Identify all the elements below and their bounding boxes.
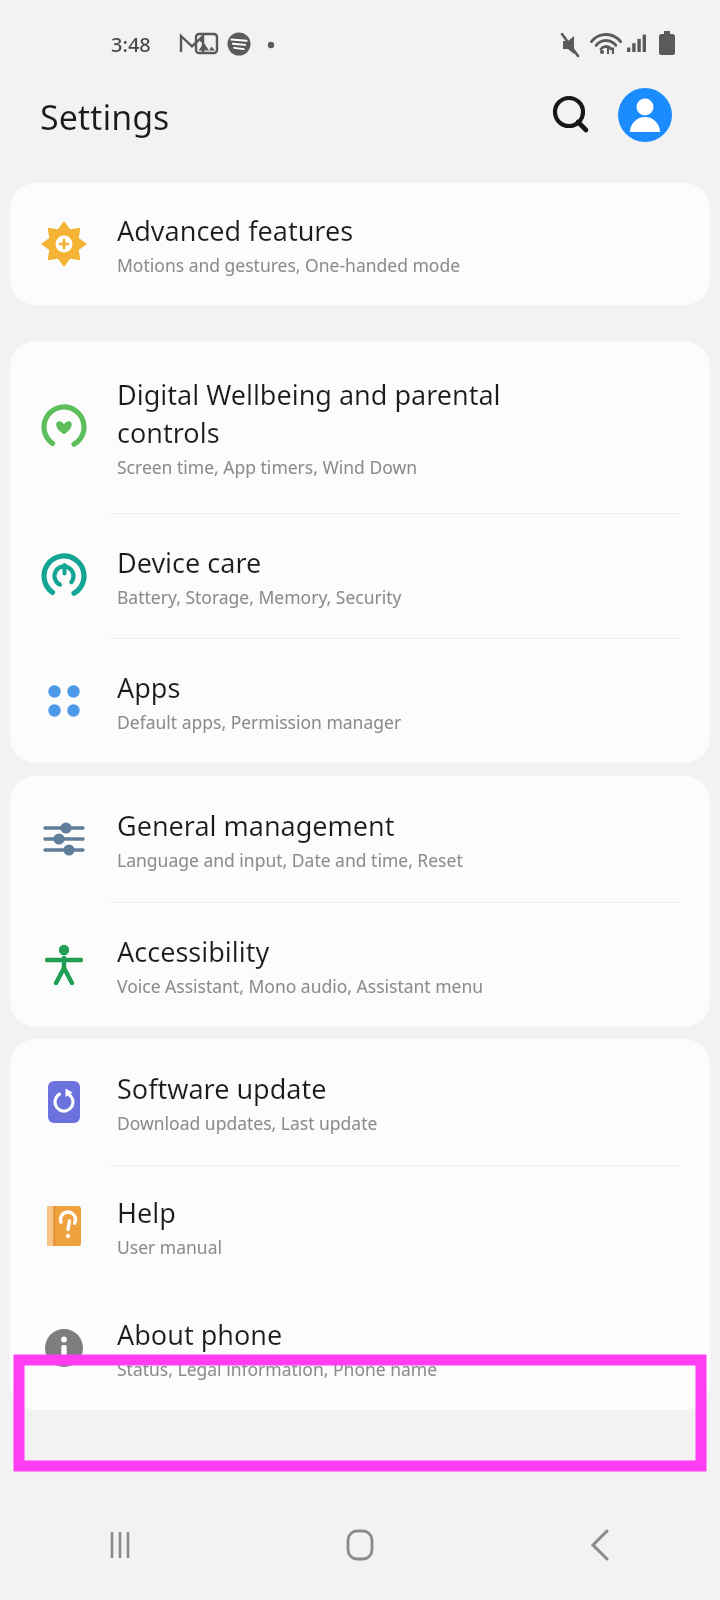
staticText: 3:48 bbox=[111, 31, 151, 58]
button[interactable]: Recent apps bbox=[0, 1490, 240, 1600]
staticText: User manual bbox=[117, 1235, 222, 1259]
staticText: Voice Assistant, Mono audio, Assistant m… bbox=[117, 974, 484, 998]
staticText: Software update bbox=[117, 1070, 327, 1107]
staticText: Default apps, Permission manager bbox=[117, 710, 402, 734]
staticText: Apps bbox=[117, 669, 181, 706]
staticText: Help bbox=[117, 1194, 176, 1231]
button[interactable]: Home bbox=[240, 1490, 480, 1600]
staticText: Language and input, Date and time, Reset bbox=[117, 848, 463, 872]
staticText: Settings bbox=[40, 94, 170, 140]
staticText: Motions and gestures, One-handed mode bbox=[117, 253, 461, 277]
staticText: Status, Legal information, Phone name bbox=[117, 1357, 438, 1381]
staticText: Accessibility bbox=[117, 933, 270, 970]
button[interactable]: Help bbox=[10, 1166, 710, 1286]
button[interactable]: Back bbox=[480, 1490, 720, 1600]
button[interactable]: Search bbox=[540, 84, 602, 146]
button[interactable]: General management bbox=[10, 776, 710, 902]
button[interactable]: Advanced features bbox=[10, 183, 710, 305]
button[interactable]: Apps bbox=[10, 639, 710, 763]
staticText: Advanced features bbox=[117, 212, 354, 249]
button[interactable]: Accessibility bbox=[10, 903, 710, 1027]
staticText: General management bbox=[117, 807, 395, 844]
button[interactable]: Digital Wellbeing and parental controls bbox=[10, 341, 710, 513]
button[interactable]: About phone bbox=[10, 1286, 710, 1410]
button[interactable]: Device care bbox=[10, 514, 710, 638]
staticText: Screen time, App timers, Wind Down bbox=[117, 455, 417, 479]
staticText: Device care bbox=[117, 544, 262, 581]
button[interactable]: Software update bbox=[10, 1039, 710, 1165]
staticText: Battery, Storage, Memory, Security bbox=[117, 585, 402, 609]
staticText: Digital Wellbeing and parental controls bbox=[117, 376, 501, 451]
button[interactable]: Account bbox=[614, 84, 676, 146]
staticText: About phone bbox=[117, 1316, 283, 1353]
staticText: Download updates, Last update bbox=[117, 1111, 378, 1135]
